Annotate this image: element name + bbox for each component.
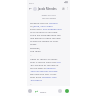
button[interactable]: Send — [65, 89, 69, 93]
staticText: Reply — [40, 90, 47, 93]
staticText: Start a return from the ord — [30, 60, 61, 63]
staticText: on the web at amazon — [30, 66, 56, 69]
staticText: link below or open the app — [30, 36, 61, 39]
staticText: ▴▮▮ — [64, 1, 68, 4]
staticText: Today at 10:24 — [41, 14, 56, 17]
staticText: ↩ — [35, 89, 39, 94]
staticText: Hi Jacob, your order — [30, 24, 53, 27]
button[interactable]: More options — [66, 7, 69, 10]
button[interactable]: Back — [28, 6, 33, 11]
staticText: -ers section of the app or — [30, 63, 59, 66]
staticText: Regards, — [30, 46, 41, 49]
staticText: .au/orders — [30, 78, 42, 81]
staticText: ⋮ — [66, 7, 69, 10]
button[interactable]: Profile — [28, 89, 32, 93]
staticText: Need to return an item? — [30, 57, 58, 60]
staticText: will help you sort it out. — [30, 72, 57, 75]
staticText: .com.au/returns and we — [30, 69, 58, 72]
staticText: ✆ — [62, 7, 65, 11]
staticText: order. — [30, 42, 37, 45]
staticText: Tap for details — [42, 17, 56, 20]
button[interactable]: Attach — [58, 89, 62, 93]
button[interactable]: ↩ — [35, 89, 47, 94]
staticText: Track the package with the — [30, 33, 61, 36]
staticText: ← — [29, 7, 32, 11]
button[interactable]: Call — [61, 6, 66, 11]
staticText: #402-9931 has shipped and — [30, 27, 62, 30]
staticText: is on its way to you now. — [30, 30, 58, 33]
staticText: -- — [30, 82, 32, 85]
staticText: The team — [30, 49, 41, 52]
staticText: to see the details of your — [30, 39, 59, 42]
staticText: amazon.com.au confirm — [30, 21, 58, 24]
staticText: -- — [30, 53, 32, 56]
staticText: Sent from amazon.com — [30, 75, 57, 78]
staticText: 9:41 — [29, 1, 34, 4]
staticText: Jacob Mendes — [38, 7, 57, 11]
